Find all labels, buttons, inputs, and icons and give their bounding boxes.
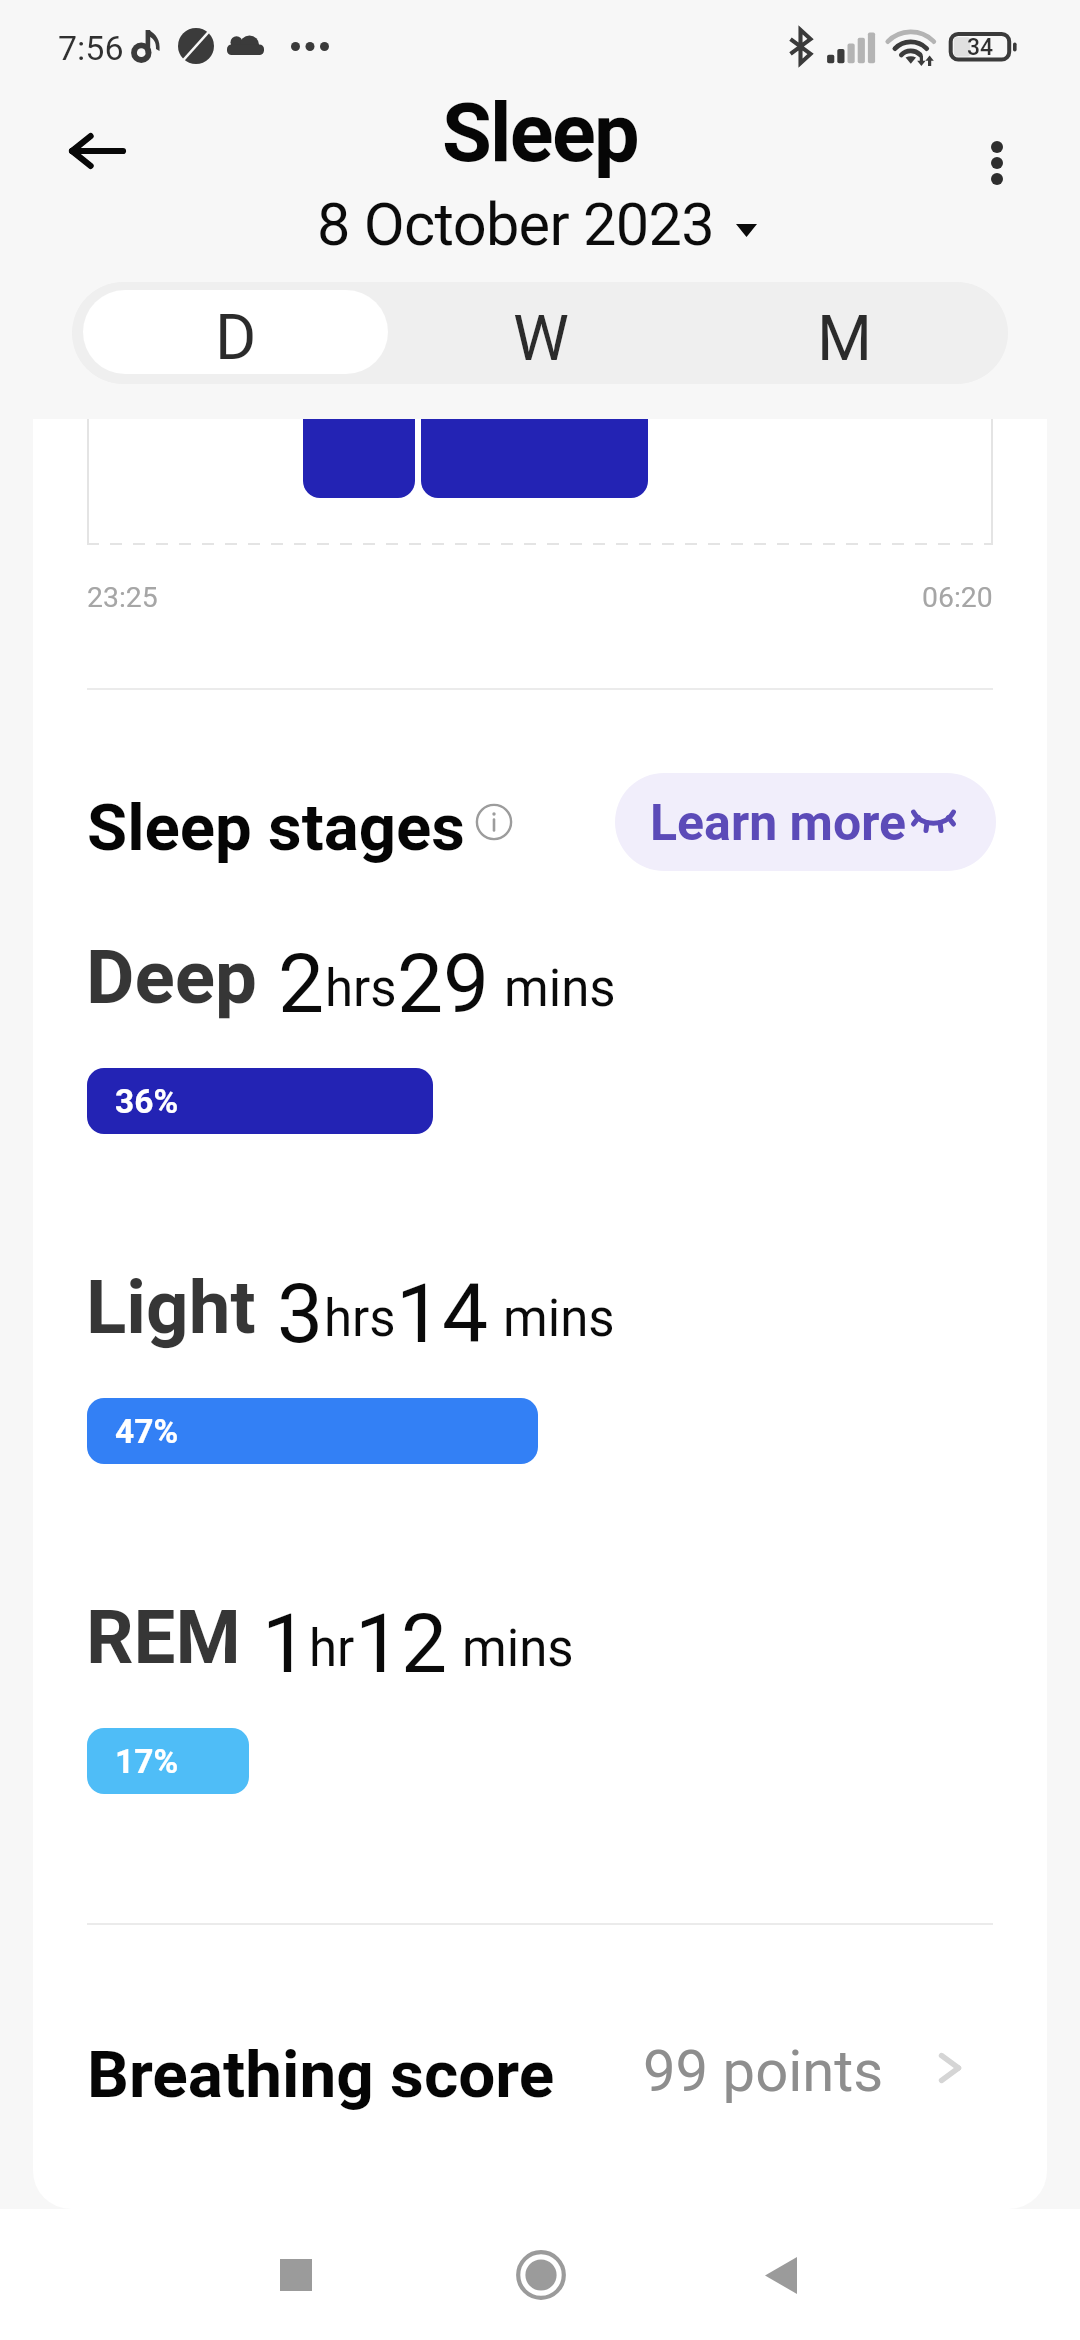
staticText: Breathing score: [87, 2036, 555, 2113]
staticText: 2: [278, 936, 325, 1032]
staticText: 17%: [115, 1742, 179, 1781]
button[interactable]: Home: [491, 2225, 591, 2325]
staticText: D: [215, 301, 257, 374]
button[interactable]: Back: [731, 2225, 831, 2325]
staticText: Deep: [86, 934, 257, 1021]
staticText: 36%: [115, 1082, 179, 1121]
staticText: hrs: [325, 959, 397, 1019]
staticText: hrs: [324, 1289, 396, 1349]
staticText: 1: [262, 1596, 309, 1692]
staticText: hr: [309, 1619, 355, 1679]
staticText: mins: [503, 1289, 615, 1349]
staticText: 29: [397, 936, 490, 1032]
button[interactable]: Learn more: [615, 773, 996, 871]
button[interactable]: D: [83, 290, 388, 374]
staticText: 12: [355, 1596, 448, 1692]
staticText: 06:20: [922, 581, 993, 614]
button[interactable]: W: [388, 282, 693, 384]
staticText: 23:25: [87, 581, 158, 614]
staticText: M: [817, 302, 873, 376]
button[interactable]: Recents: [246, 2225, 346, 2325]
staticText: mins: [504, 959, 616, 1019]
staticText: 3: [277, 1266, 324, 1362]
staticText: Sleep stages: [87, 789, 465, 866]
staticText: Learn more: [650, 794, 907, 853]
staticText: 14: [396, 1266, 489, 1362]
button[interactable]: Back: [46, 101, 146, 201]
button[interactable]: Info: [465, 793, 523, 851]
staticText: 8 October 2023: [317, 190, 714, 260]
staticText: mins: [462, 1619, 574, 1679]
staticText: W: [513, 302, 569, 376]
staticText: Sleep: [442, 86, 638, 181]
button[interactable]: M: [692, 282, 997, 384]
button[interactable]: More options: [947, 113, 1047, 213]
staticText: 47%: [115, 1412, 179, 1451]
button[interactable]: Breathing score: [33, 2019, 1047, 2127]
staticText: 99 points: [643, 2037, 884, 2105]
staticText: Light: [86, 1264, 256, 1351]
staticText: REM: [86, 1594, 241, 1681]
staticText: 34: [967, 34, 994, 61]
staticText: 7:56: [58, 28, 124, 68]
button[interactable]: 8 October 2023: [309, 186, 765, 264]
